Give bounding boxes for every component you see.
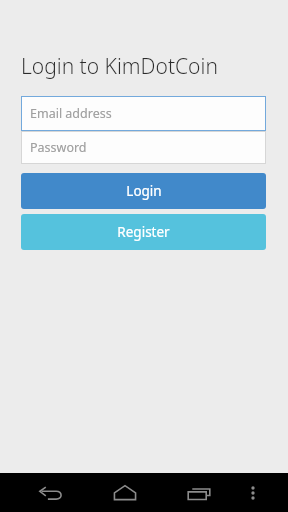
button[interactable]: Password <box>21 131 266 164</box>
button[interactable]: Recent apps <box>162 473 236 512</box>
button[interactable]: Register <box>21 214 266 250</box>
button[interactable]: Email address <box>21 96 266 131</box>
button[interactable]: Back <box>14 473 88 512</box>
button[interactable]: More options <box>240 473 266 512</box>
staticText: Login <box>126 182 162 200</box>
button[interactable]: Login <box>21 173 266 209</box>
staticText: Password <box>30 139 87 156</box>
staticText: Email address <box>30 105 112 122</box>
staticText: Register <box>117 223 170 241</box>
staticText: Login to KimDotCoin <box>21 52 218 81</box>
button[interactable]: Home <box>88 473 162 512</box>
